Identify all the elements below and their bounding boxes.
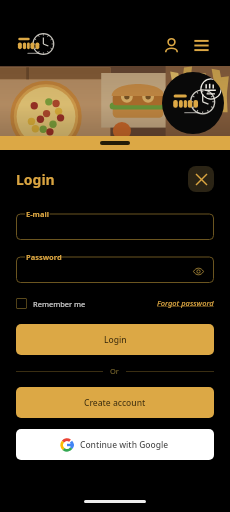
button[interactable]: Password [16,252,214,283]
button[interactable]: Forgot password [157,298,214,308]
button[interactable]: Restaurant logo [162,72,224,134]
button[interactable]: Food Clock home [16,32,54,58]
staticText: Password [26,252,62,262]
staticText: Remember me [33,299,86,309]
button[interactable]: Continue with Google [16,429,214,460]
button[interactable]: Remember me [16,298,86,309]
button[interactable]: Account [156,30,186,60]
staticText: Continue with Google [80,439,169,451]
staticText: Create account [84,397,146,409]
button[interactable]: Close [188,166,214,192]
button[interactable]: E-mail [16,209,214,240]
button[interactable]: Login [16,324,214,355]
staticText: Or [110,366,119,376]
button[interactable]: Create account [16,387,214,418]
staticText: Forgot password [157,298,214,308]
staticText: Login [104,334,127,346]
button[interactable]: Menu [186,30,216,60]
staticText: E-mail [26,209,49,219]
staticText: Login [16,170,55,189]
button[interactable]: Show password [191,264,205,278]
